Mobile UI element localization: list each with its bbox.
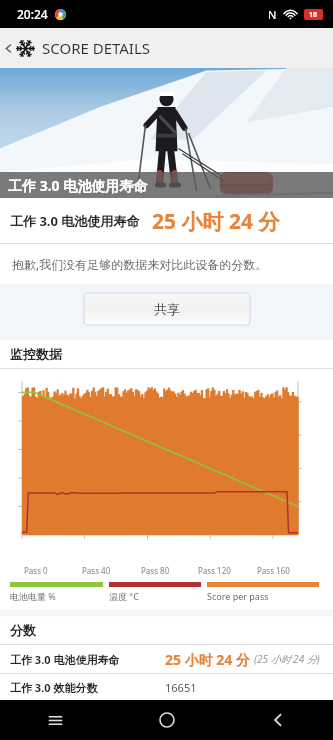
staticText: 工作 3.0 效能分数	[10, 680, 165, 695]
staticText: N	[268, 7, 277, 22]
staticText: 温度 °C	[109, 590, 139, 602]
button[interactable]: Back	[0, 28, 16, 68]
button[interactable]: 工作 3.0 电池使用寿命	[0, 645, 333, 673]
button[interactable]: Back	[222, 700, 333, 740]
staticText: SCORE DETAILS	[42, 38, 151, 58]
staticText: 电池电量 %	[10, 590, 56, 602]
staticText: Pass 80	[141, 565, 170, 576]
button[interactable]: 共享	[84, 293, 250, 325]
staticText: 监控数据	[10, 346, 62, 362]
button[interactable]: 工作 3.0 效能分数	[0, 674, 333, 700]
staticText: 抱歉,我们没有足够的数据来对比此设备的分数。	[12, 256, 268, 272]
staticText: Pass 0	[24, 565, 48, 576]
staticText: Pass 160	[257, 565, 290, 576]
staticText: 16651	[165, 680, 197, 695]
staticText: 分数	[10, 622, 36, 638]
staticText: Pass 40	[82, 565, 111, 576]
staticText: 共享	[154, 301, 180, 317]
staticText: 20:24	[17, 6, 48, 22]
staticText: 25 小时 24 分	[152, 207, 280, 236]
staticText: 18	[309, 10, 318, 20]
button[interactable]: Home	[111, 700, 222, 740]
staticText: 25 小时 24 分	[165, 650, 250, 669]
button[interactable]: Recent apps	[0, 700, 111, 740]
staticText: 工作 3.0 电池使用寿命	[8, 176, 148, 195]
staticText: (25 小时 24 分)	[254, 652, 320, 666]
staticText: 工作 3.0 电池使用寿命	[10, 212, 140, 230]
staticText: Pass 120	[198, 565, 231, 576]
staticText: Score per pass	[207, 590, 269, 602]
staticText: 工作 3.0 电池使用寿命	[10, 652, 165, 667]
